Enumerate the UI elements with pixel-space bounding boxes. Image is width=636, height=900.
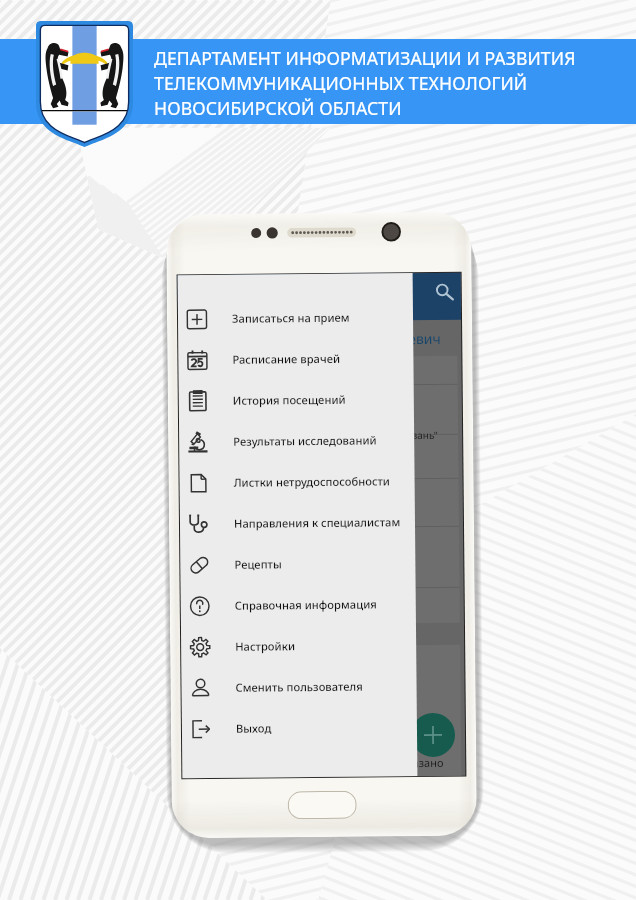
button[interactable]: ГБУЗ НСО "Городская поликлиника № 1", г.…	[182, 356, 460, 625]
button[interactable]: Настройки	[181, 624, 416, 667]
staticText: ДЕПАРТАМЕНТ ИНФОРМАТИЗАЦИИ И РАЗВИТИЯ	[154, 46, 576, 71]
button[interactable]: История посещений	[179, 378, 414, 421]
button[interactable]: Листки нетрудоспособности	[179, 460, 415, 503]
staticText: Настройки	[235, 638, 295, 654]
button[interactable]: Направления к специалистам	[180, 501, 415, 544]
staticText: Записаться на прием	[232, 310, 350, 326]
staticText: Петров Пётр Анатолиевич	[262, 329, 441, 349]
button[interactable]: Результаты исследований	[179, 419, 414, 462]
button[interactable]: Сменить пользователя	[181, 665, 417, 708]
staticText: Выход	[236, 720, 272, 736]
staticText: Листки нетрудоспособности	[233, 473, 391, 490]
staticText: Расписание врачей	[232, 351, 340, 367]
button[interactable]: Справочная информация	[181, 583, 416, 626]
button[interactable]: Записаться на прием	[178, 296, 413, 339]
staticText: Направления к специалистам	[234, 514, 401, 531]
staticText: История посещений	[233, 392, 346, 408]
staticText: Терапевт Иванов И. И.	[190, 473, 300, 488]
button[interactable]: Выход	[182, 706, 417, 749]
staticText: ГБУЗ НСО "Городская поликлиника № 1", г.…	[190, 428, 438, 444]
button[interactable]: Поиск	[429, 276, 459, 306]
staticText: Рецепты	[234, 556, 282, 572]
button[interactable]: Добавить	[411, 713, 455, 757]
button[interactable]	[185, 645, 461, 778]
button[interactable]: Расписание врачей	[178, 337, 414, 380]
staticText: Повод: головные боли, головокружения	[191, 519, 387, 535]
staticText: Результаты исследований	[233, 432, 377, 449]
staticText: Показано	[392, 755, 444, 770]
staticText: ТЕЛЕКОММУНИКАЦИОННЫХ ТЕХНОЛОГИЙ	[154, 71, 528, 96]
staticText: Справочная информация	[235, 596, 377, 613]
button[interactable]: Рецепты	[180, 542, 416, 585]
staticText: НОВОСИБИРСКОЙ ОБЛАСТИ	[154, 96, 402, 121]
staticText: Сменить пользователя	[235, 679, 364, 695]
